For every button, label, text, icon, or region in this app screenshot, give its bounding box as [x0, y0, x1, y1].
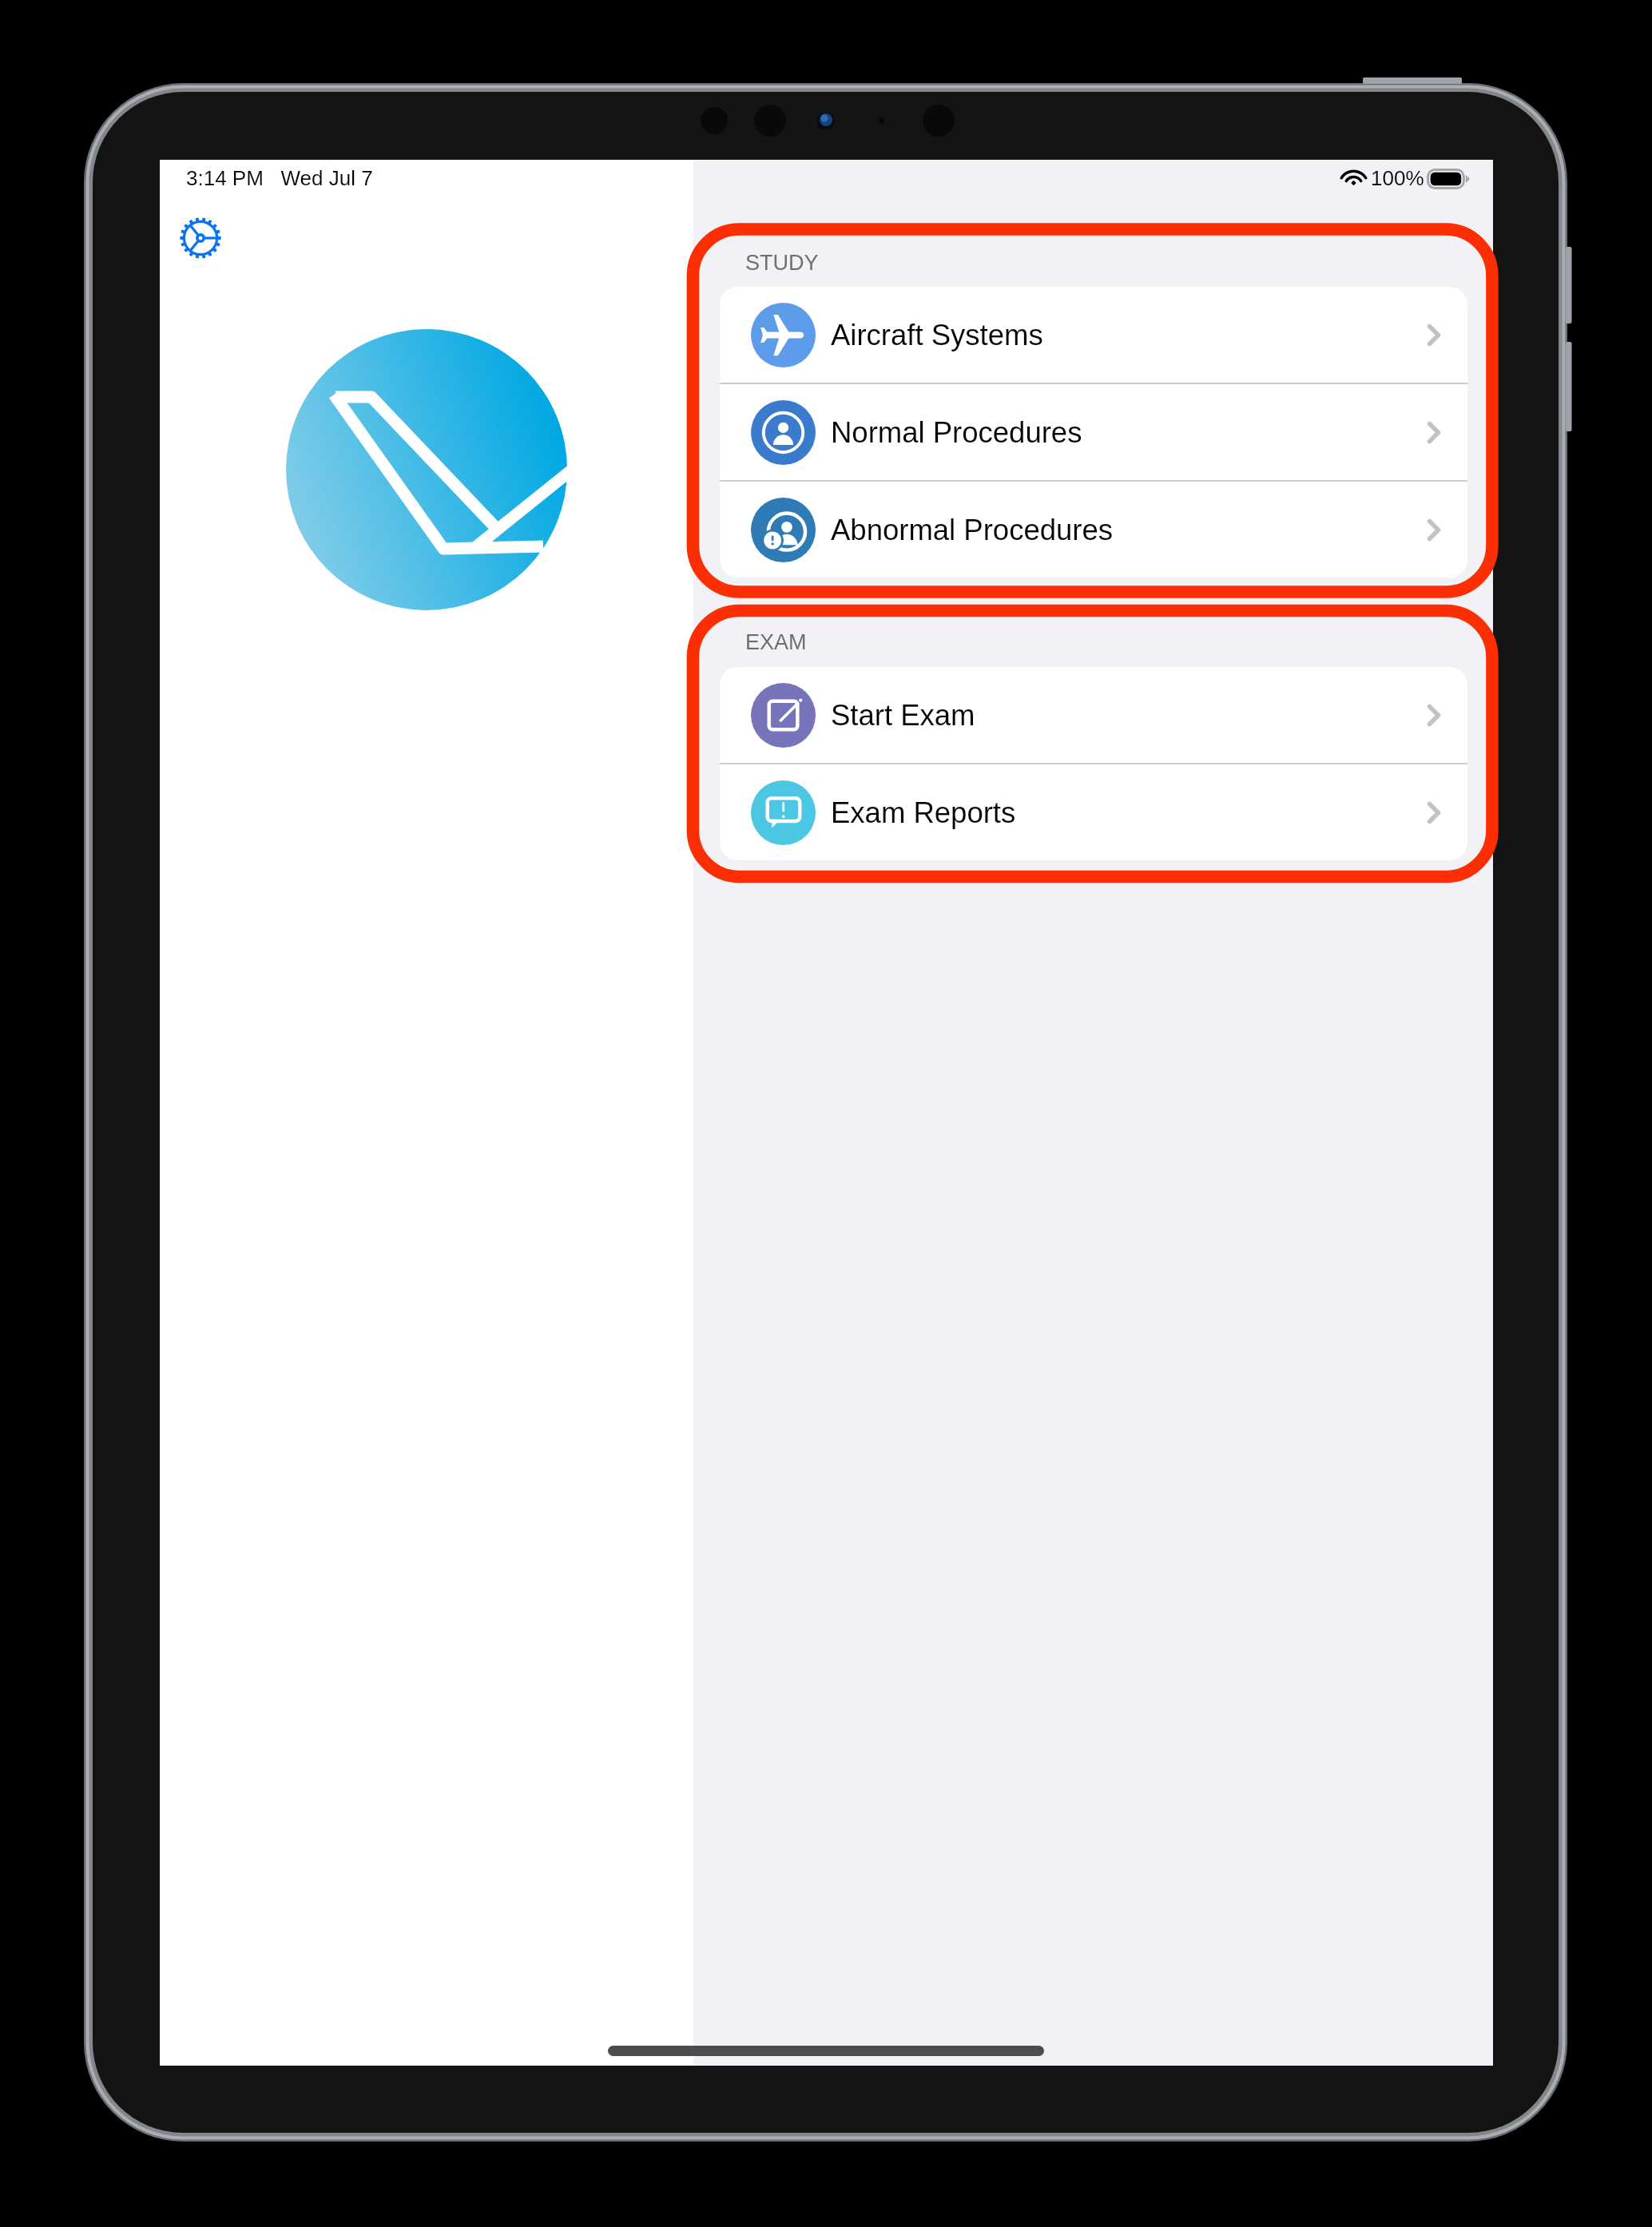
button[interactable]: Start Exam	[720, 667, 1467, 763]
staticText: EXAM	[745, 630, 807, 654]
staticText: Start Exam	[831, 699, 975, 732]
button[interactable]: Normal Procedures	[720, 384, 1467, 480]
button[interactable]: Aircraft Systems	[720, 287, 1467, 383]
staticText: 100%	[1371, 166, 1424, 189]
button[interactable]: Settings	[177, 215, 224, 261]
staticText: Abnormal Procedures	[831, 514, 1114, 546]
staticText: 3:14 PM Wed Jul 7	[186, 166, 373, 189]
button[interactable]: Abnormal Procedures	[720, 482, 1467, 578]
staticText: Aircraft Systems	[831, 319, 1043, 351]
button[interactable]: Exam Reports	[720, 764, 1467, 860]
staticText: Exam Reports	[831, 796, 1016, 829]
staticText: STUDY	[745, 251, 819, 275]
staticText: Normal Procedures	[831, 416, 1082, 449]
